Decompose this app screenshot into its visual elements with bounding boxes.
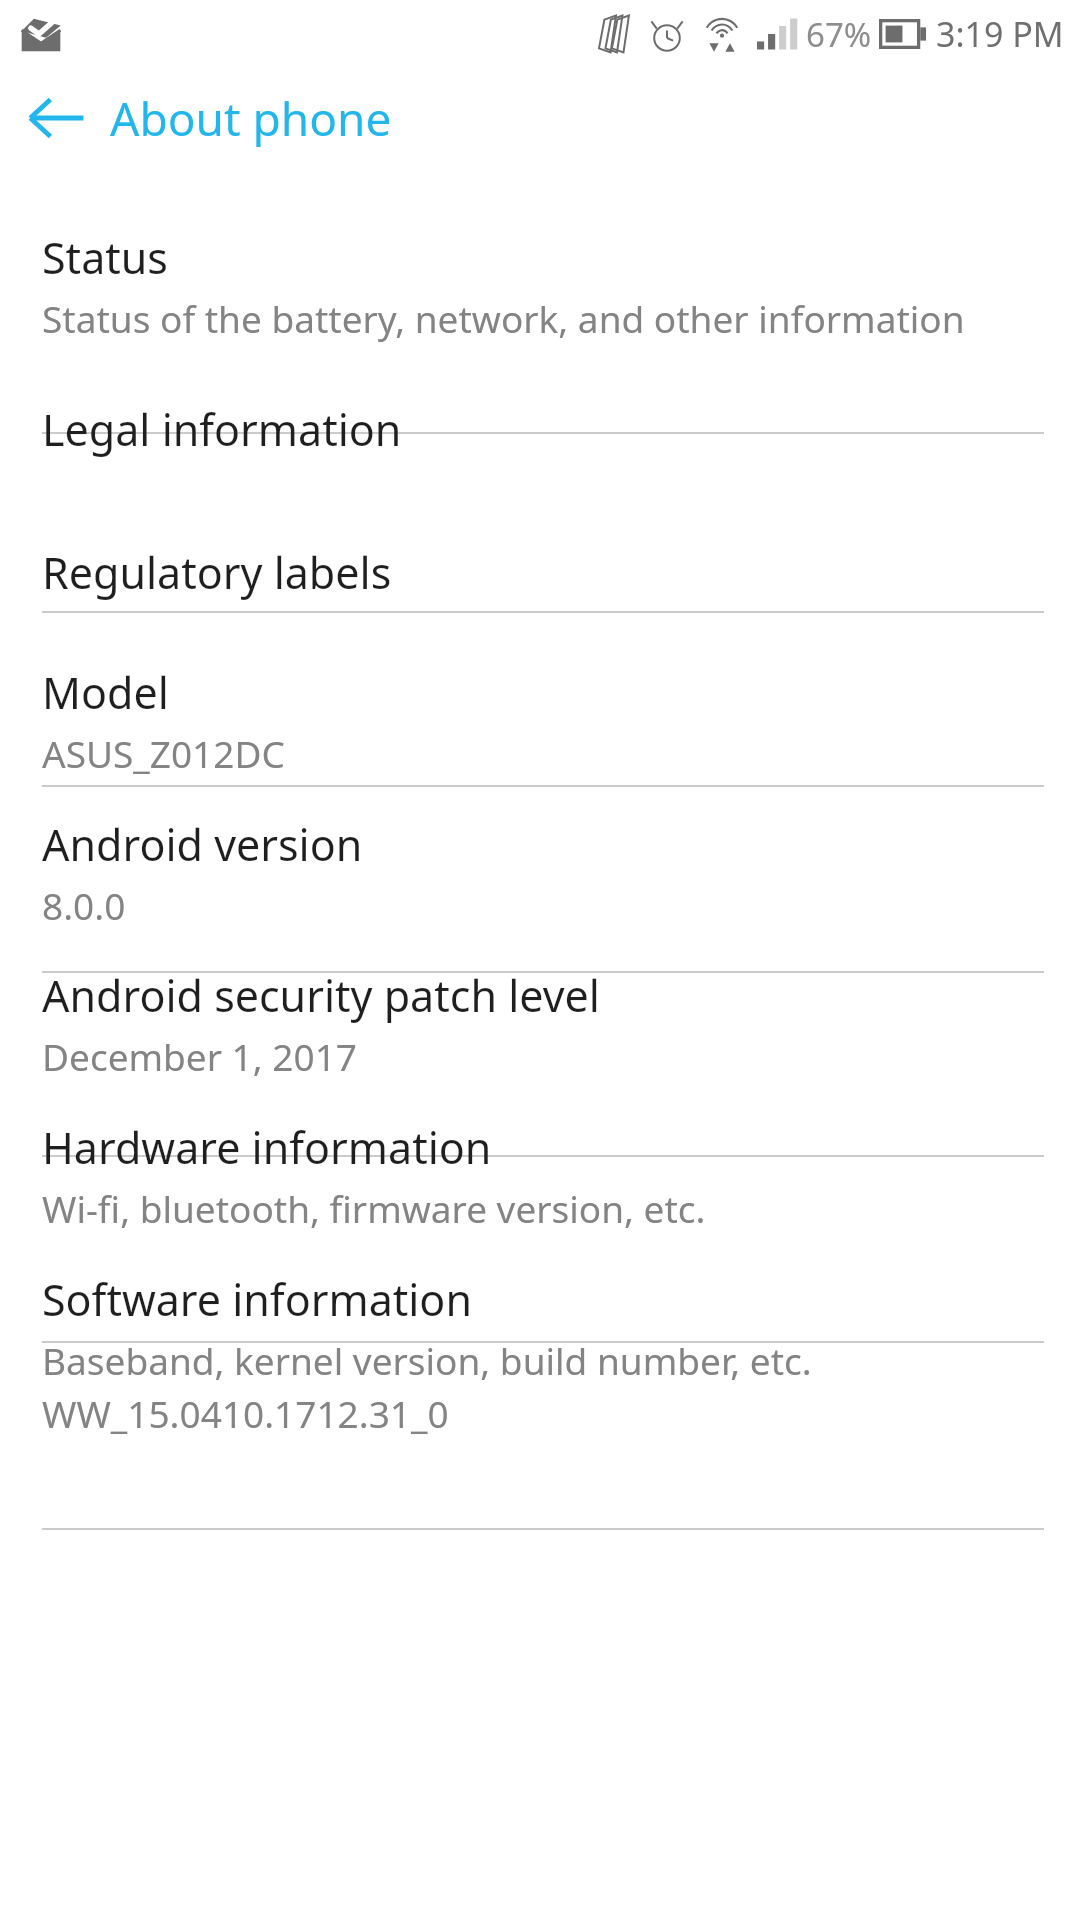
button[interactable] <box>0 785 1080 971</box>
button[interactable] <box>0 611 1080 785</box>
staticText: 8.0.0 <box>42 880 126 930</box>
staticText: About phone <box>110 87 392 150</box>
staticText: Android security patch level <box>42 966 600 1025</box>
staticText: ASUS_Z012DC <box>42 728 285 778</box>
staticText: Legal information <box>42 400 402 459</box>
button[interactable] <box>0 170 1080 432</box>
staticText: Hardware information <box>42 1118 492 1177</box>
staticText: Wi-fi, bluetooth, firmware version, etc. <box>42 1183 706 1233</box>
staticText: Software information <box>42 1270 472 1329</box>
staticText: Model <box>42 663 169 722</box>
staticText: WW_15.0410.1712.31_0 <box>42 1388 449 1438</box>
button[interactable] <box>0 1155 1080 1341</box>
staticText: Status <box>42 228 168 287</box>
staticText: December 1, 2017 <box>42 1031 357 1081</box>
button[interactable] <box>0 432 1080 611</box>
staticText: 67% <box>806 12 872 57</box>
staticText: Baseband, kernel version, build number, … <box>42 1335 812 1385</box>
button[interactable] <box>0 1528 1080 1760</box>
staticText: Regulatory labels <box>42 543 392 602</box>
button[interactable] <box>0 971 1080 1155</box>
button[interactable]: Back <box>14 76 98 160</box>
button[interactable] <box>0 1341 1080 1528</box>
staticText: 3:19 PM <box>936 11 1064 57</box>
staticText: Status of the battery, network, and othe… <box>42 293 965 343</box>
staticText: Android version <box>42 815 363 874</box>
